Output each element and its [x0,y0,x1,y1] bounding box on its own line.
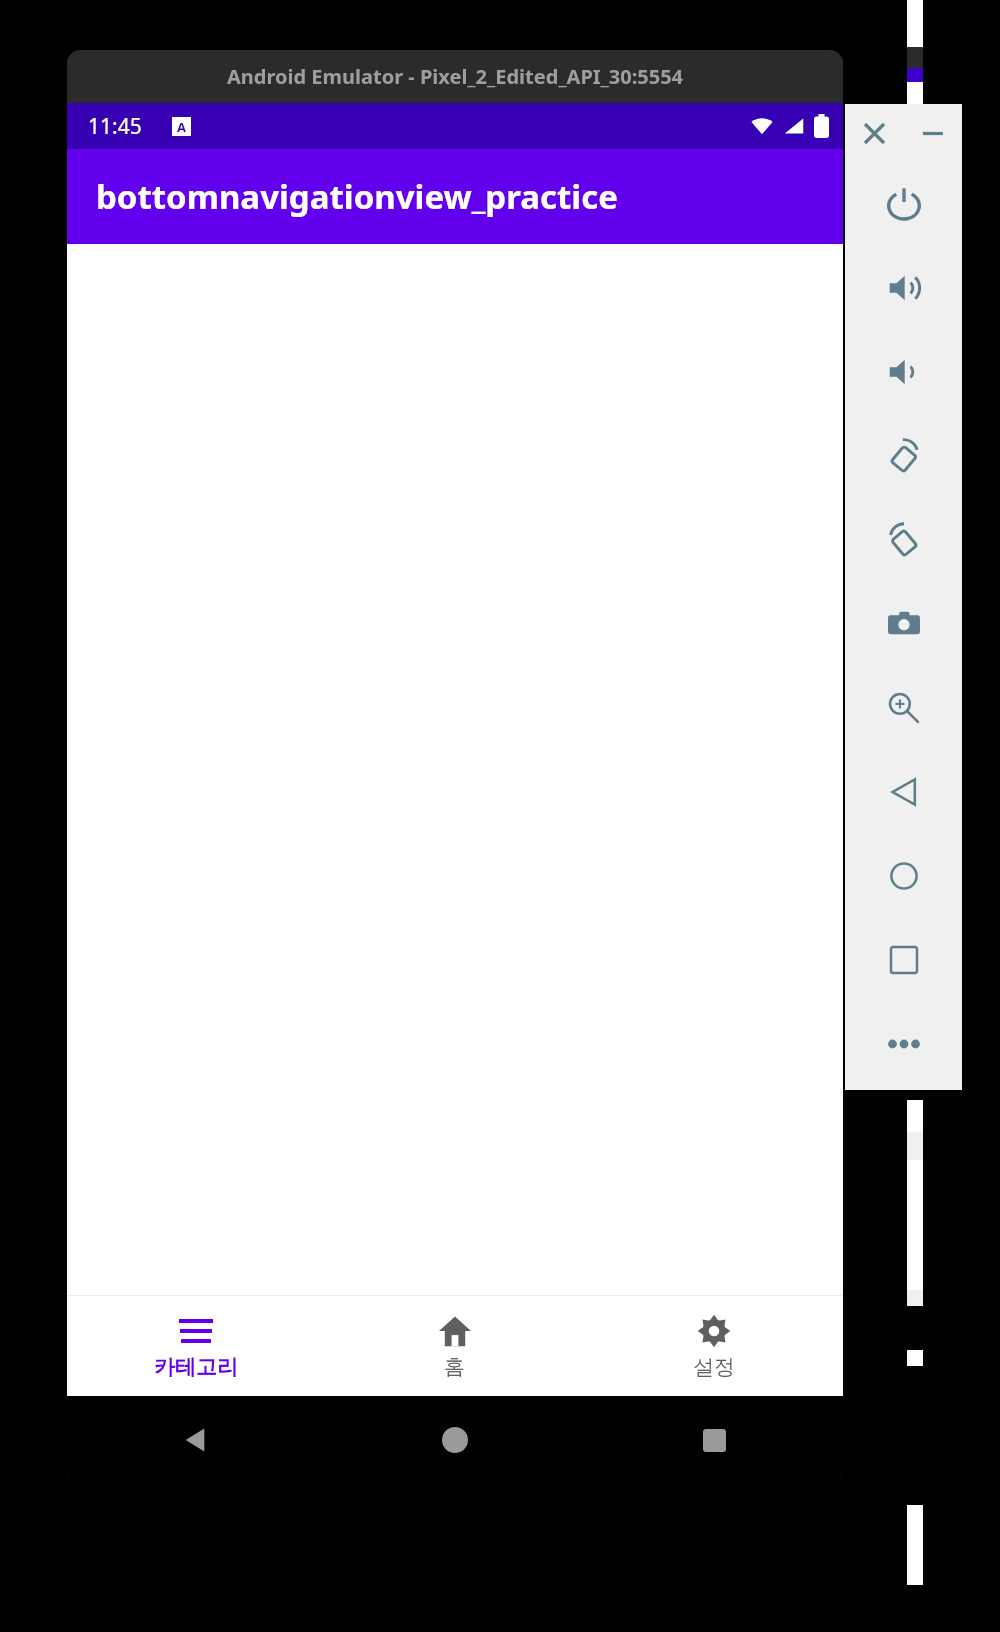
staticText: 카테고리 [154,1354,238,1380]
button[interactable]: Minimize [903,104,962,162]
staticText: Android Emulator - Pixel_2_Edited_API_30… [227,63,684,90]
button[interactable]: 카테고리 [67,1296,325,1396]
button[interactable]: Rotate left [845,414,962,498]
staticText: bottomnavigationview_practice [96,174,618,219]
staticText: 11:45 [88,112,142,141]
staticText: A [177,118,186,136]
button[interactable]: Home [427,1412,483,1468]
button[interactable]: Overview [845,918,962,1002]
button[interactable]: Close [845,104,903,162]
button[interactable]: 설정 [584,1296,843,1396]
button[interactable]: Power [845,162,962,246]
button[interactable]: Volume down [845,330,962,414]
button[interactable]: Home [845,834,962,918]
button[interactable]: Take screenshot [845,582,962,666]
button[interactable]: Rotate right [845,498,962,582]
button[interactable]: Zoom [845,666,962,750]
button[interactable]: More [845,1002,962,1086]
button[interactable]: Recent apps [686,1412,742,1468]
staticText: 홈 [444,1354,465,1380]
button[interactable]: Back [845,750,962,834]
staticText: 설정 [693,1354,735,1380]
button[interactable]: 홈 [325,1296,584,1396]
button[interactable]: Volume up [845,246,962,330]
button[interactable]: Back [168,1412,224,1468]
